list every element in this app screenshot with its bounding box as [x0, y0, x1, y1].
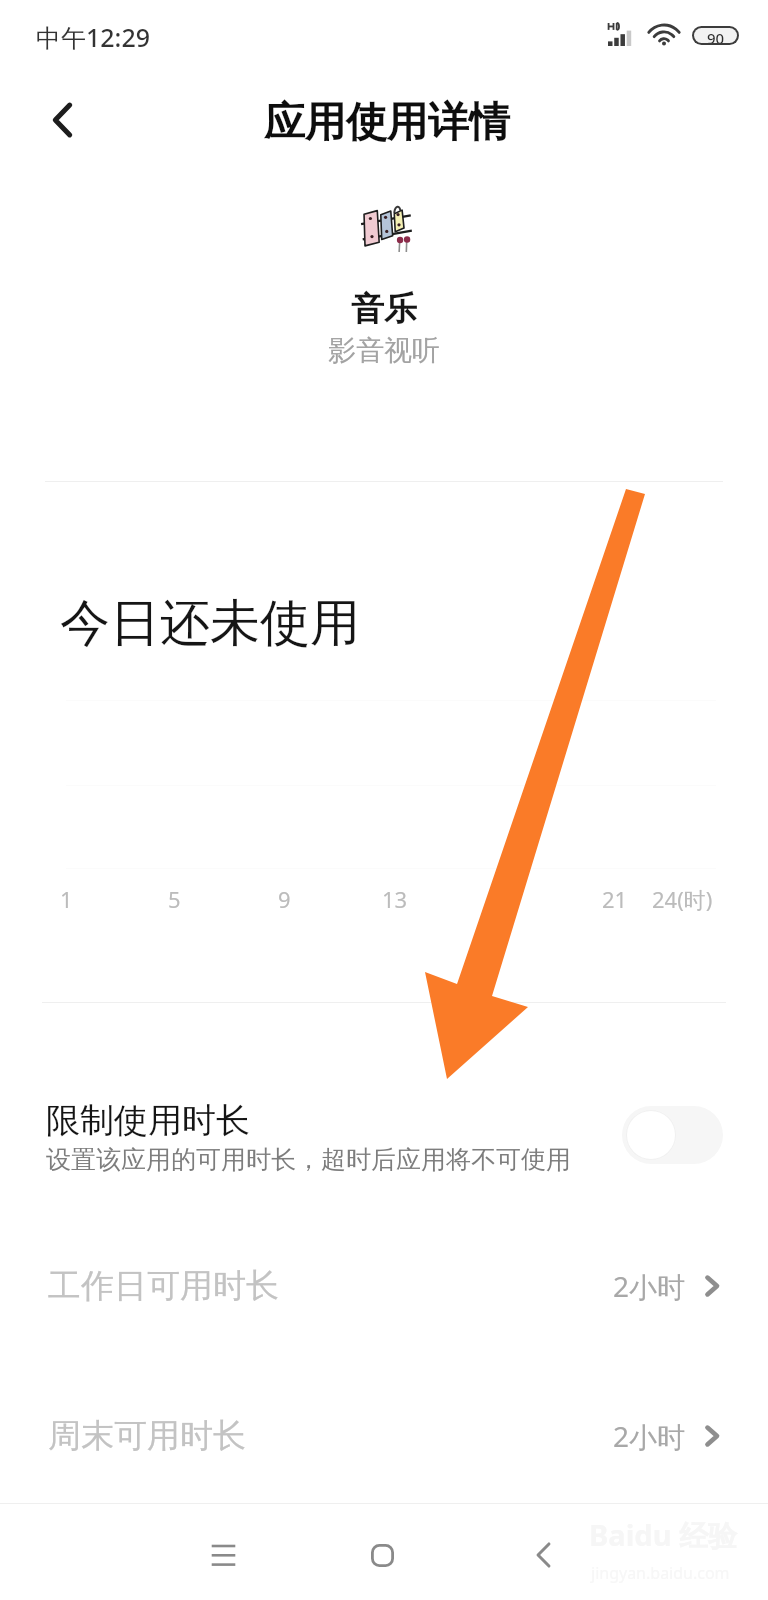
staticText: 2小时: [613, 1267, 686, 1305]
staticText: 21: [602, 884, 628, 914]
staticText: Baidu 经验: [589, 1515, 738, 1555]
staticText: 周末可用时长: [48, 1415, 246, 1457]
staticText: 9: [278, 884, 291, 914]
staticText: 中午12:29: [36, 20, 151, 54]
staticText: 限制使用时长: [46, 1099, 250, 1142]
staticText: 工作日可用时长: [48, 1265, 279, 1307]
staticText: 影音视听: [328, 333, 440, 368]
staticText: 音乐: [351, 288, 417, 330]
staticText: 5: [168, 884, 181, 914]
button[interactable]: Back: [22, 80, 102, 160]
button[interactable]: Toggle usage limit: [622, 1106, 723, 1164]
staticText: 13: [382, 884, 408, 914]
button[interactable]: 周末可用时长: [0, 1398, 768, 1474]
staticText: 90: [707, 28, 725, 43]
button[interactable]: Home: [348, 1521, 416, 1589]
button[interactable]: Recent apps: [189, 1521, 257, 1589]
button[interactable]: 工作日可用时长: [0, 1248, 768, 1324]
staticText: 24(时): [652, 884, 713, 914]
button[interactable]: 限制使用时长: [0, 1060, 768, 1210]
staticText: 2小时: [613, 1417, 686, 1455]
staticText: 应用使用详情: [264, 97, 510, 149]
staticText: 1: [60, 884, 73, 914]
button[interactable]: Back: [509, 1521, 577, 1589]
staticText: 今日还未使用: [60, 592, 360, 655]
staticText: 设置该应用的可用时长，超时后应用将不可使用: [46, 1144, 571, 1175]
